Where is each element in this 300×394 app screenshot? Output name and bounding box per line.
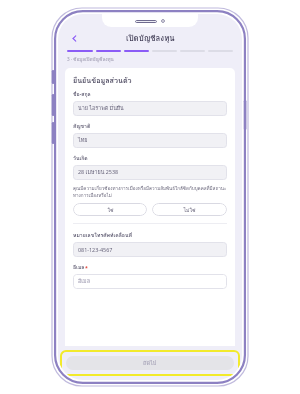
button[interactable]: อีเมล	[73, 274, 227, 289]
staticText: 081-123-4567	[78, 246, 113, 253]
button[interactable]: Back	[67, 31, 81, 45]
button[interactable]: ใช่	[73, 203, 147, 216]
button[interactable]: ไม่ใช่	[152, 203, 227, 216]
staticText: อีเมล	[73, 263, 85, 271]
staticText: ไทย	[78, 136, 88, 145]
button[interactable]: 081-123-4567	[73, 242, 227, 257]
staticText: ชื่อ-สกุล	[73, 90, 91, 98]
staticText: ไม่ใช่	[183, 206, 196, 214]
button[interactable]: ไทย	[73, 133, 227, 148]
staticText: คุณมีความเกี่ยวข้องทางการเมืองหรือมีความ…	[73, 185, 227, 199]
staticText: *	[85, 264, 88, 271]
staticText: อีเมล	[78, 277, 90, 286]
staticText: ถัดไป	[143, 359, 157, 368]
staticText: วันเกิด	[73, 154, 88, 162]
staticText: ใช่	[107, 206, 114, 214]
button[interactable]: ถัดไป	[66, 356, 234, 370]
staticText: ยืนยันข้อมูลส่วนตัว	[73, 75, 132, 86]
button[interactable]: 28 เมษายน 2538	[73, 165, 227, 180]
staticText: 3 · ข้อมูลเปิดบัญชีลงทุน	[67, 56, 114, 63]
staticText: หมายเลขโทรศัพท์เคลื่อนที่	[73, 231, 132, 239]
staticText: นาย ไอราพต มั่นยืน	[78, 104, 124, 113]
staticText: สัญชาติ	[73, 122, 91, 130]
staticText: 28 เมษายน 2538	[78, 168, 119, 177]
staticText: เปิดบัญชีลงทุน	[126, 32, 175, 44]
button[interactable]: นาย ไอราพต มั่นยืน	[73, 101, 227, 116]
